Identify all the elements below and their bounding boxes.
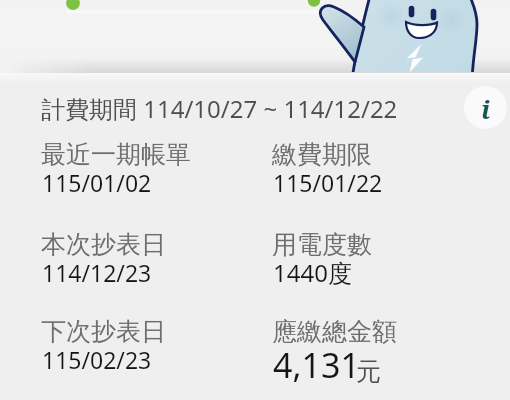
staticText: 1440度 bbox=[273, 256, 352, 289]
staticText: 4,131 bbox=[273, 342, 360, 388]
staticText: 繳費期限 bbox=[272, 139, 372, 170]
staticText: 應繳總金額 bbox=[272, 316, 397, 347]
button[interactable]: Information bbox=[464, 86, 507, 129]
staticText: 最近一期帳單 bbox=[41, 139, 191, 170]
staticText: 115/02/23 bbox=[42, 344, 152, 375]
staticText: 計費期間 114/10/27 ~ 114/12/22 bbox=[41, 92, 398, 125]
staticText: 114/12/23 bbox=[42, 257, 152, 288]
staticText: 用電度數 bbox=[272, 229, 372, 260]
staticText: 元 bbox=[356, 356, 381, 387]
staticText: 本次抄表日 bbox=[41, 229, 166, 260]
staticText: i bbox=[481, 91, 491, 126]
staticText: 下次抄表日 bbox=[41, 316, 166, 347]
staticText: 115/01/02 bbox=[42, 167, 152, 198]
staticText: 115/01/22 bbox=[273, 167, 383, 198]
